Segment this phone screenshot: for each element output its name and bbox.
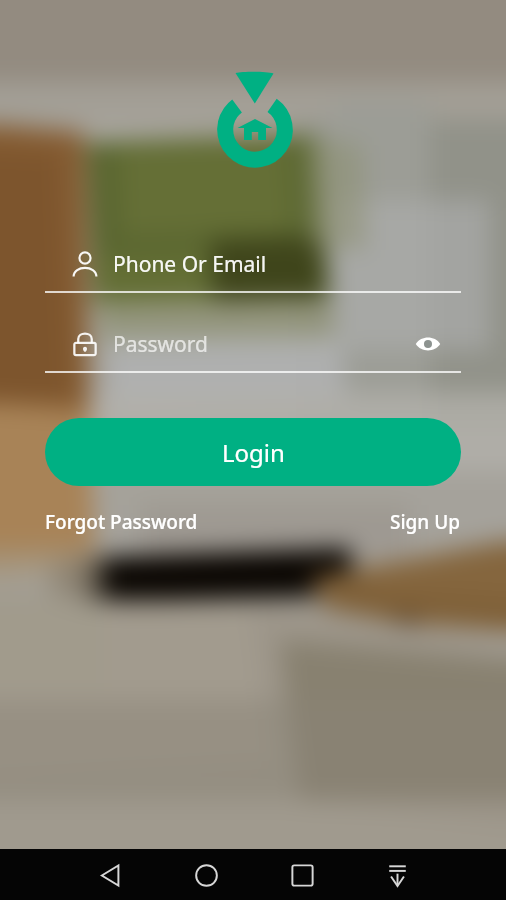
staticText: Login <box>222 436 285 469</box>
button[interactable]: Recents <box>278 851 326 899</box>
staticText: Forgot Password <box>45 509 198 535</box>
staticText: Password <box>113 330 208 359</box>
button[interactable]: Home <box>182 851 230 899</box>
button[interactable]: Sign Up <box>390 509 461 535</box>
staticText: Phone Or Email <box>113 250 267 279</box>
button[interactable]: Back <box>87 851 135 899</box>
button[interactable]: Forgot Password <box>45 509 198 535</box>
button[interactable]: Login <box>45 418 461 486</box>
button[interactable]: Show password <box>409 325 447 363</box>
button[interactable]: Downloads <box>373 851 421 899</box>
staticText: Sign Up <box>390 509 461 535</box>
